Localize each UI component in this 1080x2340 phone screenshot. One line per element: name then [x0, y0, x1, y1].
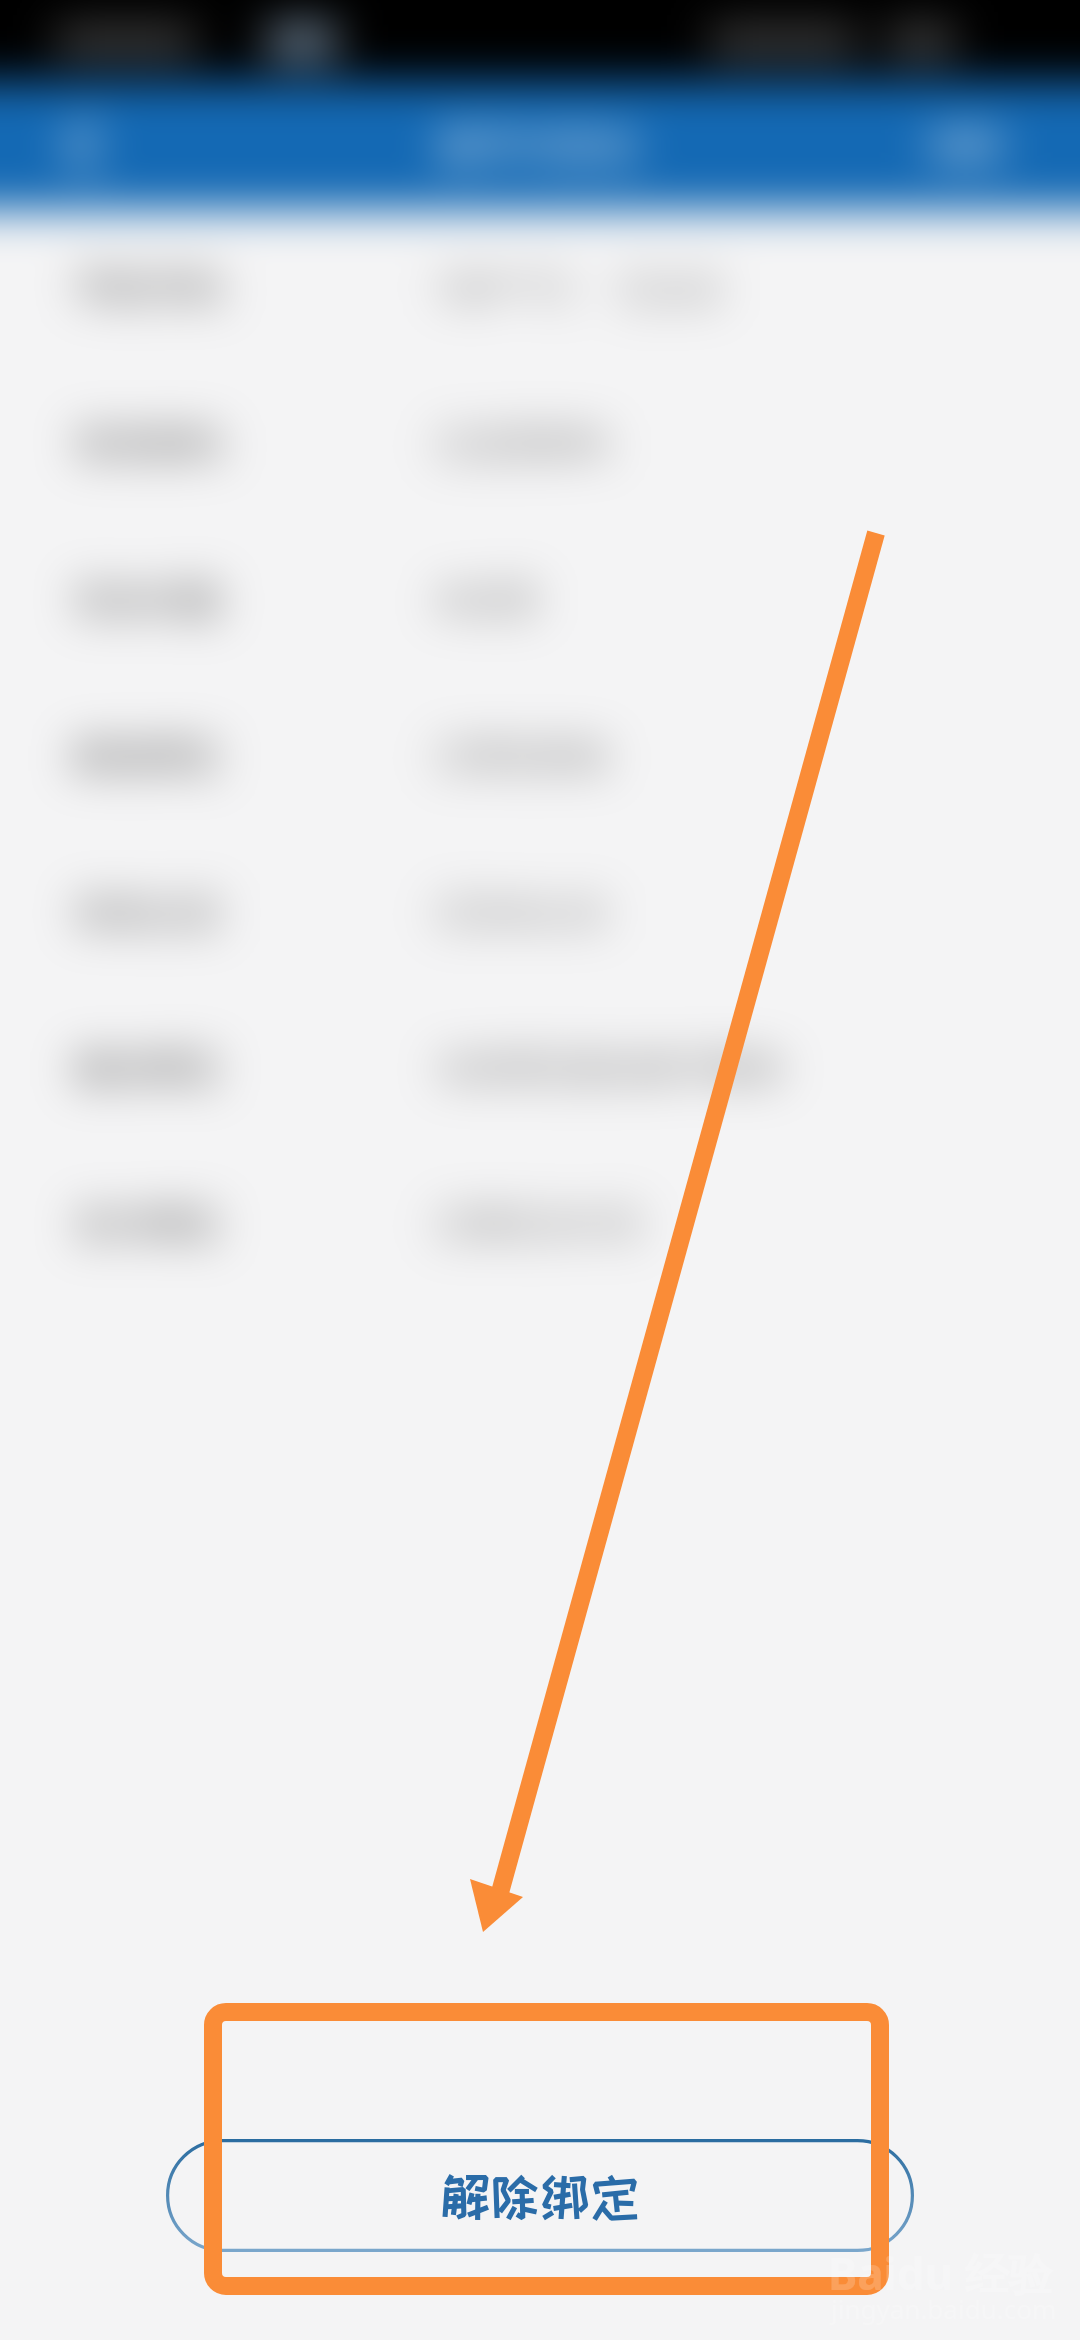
staticText: 当前绑定微信账号昵称 [434, 1046, 784, 1090]
staticText: 已绑定支付宝 [434, 1202, 644, 1246]
button[interactable]: 支付绑定 [0, 1146, 1080, 1302]
button[interactable]: 手机号码 [0, 210, 1080, 366]
staticText: 未设置 [434, 578, 539, 622]
staticText: 手机号码 [74, 265, 222, 312]
staticText: 实名认证 [74, 889, 222, 936]
button[interactable]: 登录密码 [0, 366, 1080, 522]
button[interactable]: 安全问题 [0, 522, 1080, 678]
button[interactable]: Back [34, 91, 134, 201]
staticText: 已设置密码 [434, 422, 609, 466]
button[interactable]: 解除绑定 [166, 2139, 914, 2252]
staticText: jingyan.baidu.com [831, 2291, 1057, 2326]
staticText: 微信绑定 [74, 1045, 222, 1092]
staticText: 登录密码 [74, 421, 222, 468]
staticText: 安全问题 [74, 577, 222, 624]
button[interactable]: More options [906, 91, 1026, 201]
staticText: 已实名认证 [434, 890, 609, 934]
staticText: 支付绑定 [74, 1201, 222, 1248]
staticText: 解除绑定 [441, 2169, 640, 2223]
staticText: 邮箱绑定 [74, 733, 222, 780]
staticText: 已绑定邮箱 [434, 734, 609, 778]
button[interactable]: 实名认证 [0, 834, 1080, 990]
button[interactable]: 微信绑定 [0, 990, 1080, 1146]
button[interactable]: 邮箱绑定 [0, 678, 1080, 834]
staticText: 186**72 已认证 [434, 264, 724, 312]
staticText: 账号与安全 [440, 121, 640, 171]
staticText: Baidu 经验 [828, 2243, 1053, 2303]
